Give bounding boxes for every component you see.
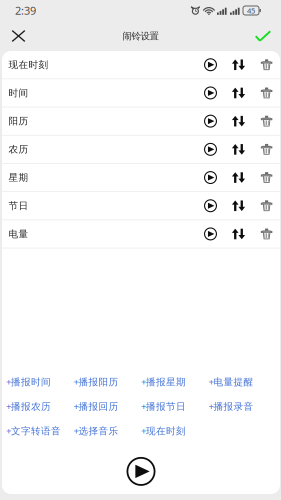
staticText: +播报星期 — [141, 375, 186, 388]
button[interactable]: Delete — [253, 164, 280, 191]
button[interactable]: Delete — [253, 107, 280, 135]
button[interactable]: Reorder — [224, 107, 253, 135]
button[interactable]: Reorder — [224, 79, 253, 107]
button[interactable]: Delete — [253, 136, 280, 163]
button[interactable]: +播报回历 — [73, 396, 141, 416]
button[interactable]: Delete — [253, 220, 280, 248]
button[interactable]: Delete — [253, 51, 280, 78]
button[interactable]: Delete — [253, 192, 280, 219]
staticText: +播报节日 — [141, 400, 186, 413]
staticText: 闹铃设置 — [122, 30, 158, 42]
staticText: +播报阳历 — [73, 375, 118, 388]
button[interactable]: Play sound — [197, 220, 224, 248]
staticText: +播报农历 — [6, 400, 51, 413]
button[interactable]: Reorder — [224, 220, 253, 248]
staticText: +播报时间 — [6, 375, 51, 388]
button[interactable]: Play sound — [197, 51, 224, 78]
staticText: +现在时刻 — [141, 424, 186, 437]
staticText: +播报录音 — [208, 400, 253, 413]
button[interactable]: +文字转语音 — [6, 421, 73, 441]
staticText: +选择音乐 — [73, 424, 118, 437]
staticText: 电量 — [8, 228, 28, 240]
staticText: 星期 — [8, 171, 28, 184]
button[interactable]: Play — [119, 457, 163, 486]
button[interactable]: +播报时间 — [6, 372, 73, 392]
button[interactable]: Reorder — [224, 192, 253, 219]
staticText: 农历 — [8, 143, 28, 155]
button[interactable]: +选择音乐 — [73, 421, 141, 441]
button[interactable]: +电量提醒 — [208, 372, 276, 392]
button[interactable]: +播报农历 — [6, 396, 73, 416]
button[interactable]: Confirm — [247, 21, 279, 51]
button[interactable]: Play sound — [197, 79, 224, 107]
button[interactable]: Close — [2, 21, 35, 51]
button[interactable]: +现在时刻 — [141, 421, 208, 441]
staticText: 现在时刻 — [8, 59, 48, 71]
staticText: 节日 — [8, 200, 28, 212]
button[interactable]: Reorder — [224, 136, 253, 163]
staticText: 时间 — [8, 87, 28, 99]
button[interactable]: Play sound — [197, 192, 224, 219]
staticText: +播报回历 — [73, 400, 118, 413]
staticText: 45 — [247, 5, 255, 16]
staticText: +电量提醒 — [208, 375, 253, 388]
button[interactable]: Reorder — [224, 51, 253, 78]
staticText: 阳历 — [8, 115, 28, 127]
button[interactable]: Reorder — [224, 164, 253, 191]
staticText: 2:39 — [15, 3, 36, 18]
button[interactable]: +播报录音 — [208, 396, 276, 416]
staticText: +文字转语音 — [6, 424, 61, 437]
button[interactable]: +播报节日 — [141, 396, 208, 416]
button[interactable]: Play sound — [197, 107, 224, 135]
button[interactable]: +播报阳历 — [73, 372, 141, 392]
button[interactable]: +播报星期 — [141, 372, 208, 392]
button[interactable]: Play sound — [197, 136, 224, 163]
button[interactable]: Delete — [253, 79, 280, 107]
button[interactable]: Play sound — [197, 164, 224, 191]
